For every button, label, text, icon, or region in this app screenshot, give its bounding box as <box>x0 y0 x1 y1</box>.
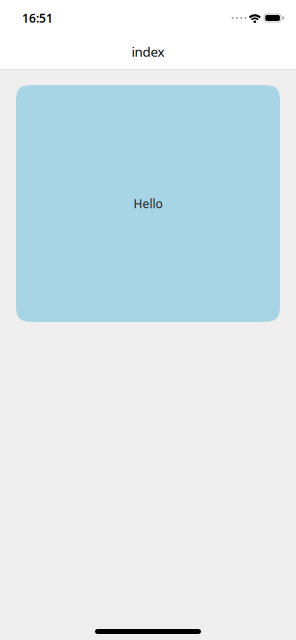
button[interactable]: Hello <box>16 85 280 322</box>
staticText: Hello <box>133 195 162 211</box>
staticText: index <box>131 43 164 60</box>
staticText: 16:51 <box>22 10 53 26</box>
